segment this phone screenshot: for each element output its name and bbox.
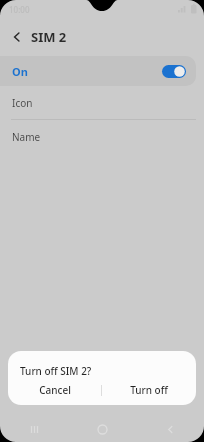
button[interactable]: Icon [0, 86, 204, 119]
button[interactable]: Turn off [102, 378, 196, 402]
staticText: Icon [12, 96, 33, 110]
staticText: SIM 2 [31, 28, 67, 46]
staticText: Name [12, 130, 41, 144]
button[interactable]: On [0, 56, 196, 86]
button[interactable]: Back [6, 26, 28, 48]
staticText: Turn off SIM 2? [20, 364, 92, 378]
button[interactable]: Cancel [8, 378, 101, 402]
staticText: On [12, 64, 28, 79]
staticText: Cancel [39, 383, 71, 397]
staticText: Turn off [130, 383, 168, 397]
button[interactable]: Back [136, 416, 204, 442]
button[interactable]: Recents [0, 416, 68, 442]
button[interactable]: Name [0, 120, 204, 153]
staticText: 10:00 [9, 4, 30, 15]
